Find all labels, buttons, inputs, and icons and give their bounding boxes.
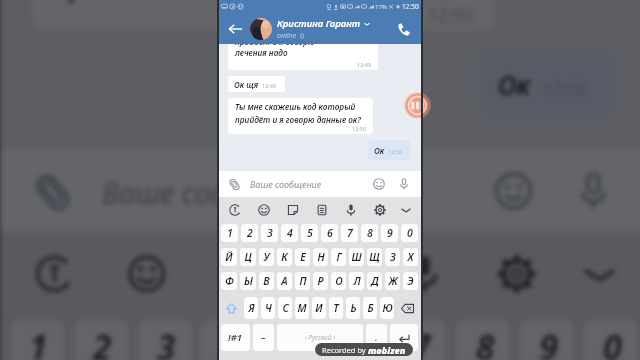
button[interactable]: 4: [281, 224, 298, 242]
button[interactable]: 2: [73, 319, 128, 360]
staticText: 12:49: [357, 61, 372, 68]
button[interactable]: Ю: [380, 297, 394, 319]
button[interactable]: Ок щя: [228, 76, 285, 92]
button[interactable]: Я: [244, 297, 258, 319]
button[interactable]: Е: [295, 248, 310, 266]
button[interactable]: К: [277, 248, 292, 266]
button[interactable]: Translate: [220, 199, 249, 221]
button[interactable]: Voice input: [376, 239, 469, 309]
button[interactable]: 7: [392, 319, 447, 360]
button[interactable]: 3: [137, 319, 191, 360]
button[interactable]: Stickers: [191, 239, 284, 309]
button[interactable]: 1: [221, 224, 238, 242]
button[interactable]: Ф: [221, 272, 237, 290]
button[interactable]: Voice message: [568, 165, 619, 216]
button[interactable]: Shift: [221, 297, 241, 319]
button[interactable]: Emoji: [99, 239, 191, 309]
button[interactable]: 7: [341, 224, 358, 242]
staticText: 6: [327, 226, 333, 240]
button[interactable]: Attach: [226, 176, 242, 192]
button[interactable]: 1: [10, 319, 64, 360]
button[interactable]: Ц: [240, 248, 256, 266]
button[interactable]: ‹ Русский ›: [277, 324, 363, 351]
button[interactable]: Translate: [6, 239, 99, 309]
button[interactable]: 0: [401, 224, 418, 242]
button[interactable]: Ж: [385, 272, 400, 290]
button[interactable]: 6: [321, 224, 338, 242]
button[interactable]: П: [295, 272, 310, 290]
button[interactable]: Ты мне скажешь код который: [228, 98, 373, 134]
staticText: Ты мне скажешь код который: [235, 101, 356, 112]
button[interactable]: Attach: [25, 165, 76, 216]
button[interactable]: !#1: [221, 324, 250, 351]
button[interactable]: 5: [265, 319, 319, 360]
staticText: прийдёт и я говорю: [235, 44, 315, 47]
button[interactable]: Emoji: [371, 176, 387, 192]
button[interactable]: Stickers: [278, 199, 307, 221]
button[interactable]: Enter: [390, 324, 418, 351]
button[interactable]: С: [278, 297, 292, 319]
button[interactable]: 8: [361, 224, 378, 242]
button[interactable]: У: [259, 248, 274, 266]
button[interactable]: 2: [241, 224, 258, 242]
staticText: Ф: [225, 274, 234, 288]
button[interactable]: А: [277, 272, 292, 290]
button[interactable]: З: [385, 248, 400, 266]
button[interactable]: Settings: [469, 239, 561, 309]
staticText: М: [297, 301, 307, 315]
button[interactable]: Х: [403, 248, 418, 266]
button[interactable]: Г: [331, 248, 346, 266]
button[interactable]: Emoji: [488, 165, 539, 216]
button[interactable]: 4: [201, 319, 255, 360]
button[interactable]: –: [253, 324, 274, 351]
button[interactable]: 9: [520, 319, 574, 360]
button[interactable]: Ты мне скажешь код который: [32, 0, 494, 31]
button[interactable]: 5: [301, 224, 318, 242]
button[interactable]: Clipboard: [307, 199, 336, 221]
button[interactable]: Ь: [346, 297, 360, 319]
button[interactable]: Й: [221, 248, 237, 266]
button[interactable]: В: [259, 272, 274, 290]
button[interactable]: О: [331, 272, 346, 290]
button[interactable]: Back: [225, 19, 245, 39]
button[interactable]: 8: [456, 319, 510, 360]
button[interactable]: Clipboard: [284, 239, 376, 309]
staticText: Я: [248, 301, 255, 315]
button[interactable]: Settings: [365, 199, 394, 221]
staticText: 0: [407, 226, 413, 240]
button[interactable]: Call: [393, 19, 413, 39]
staticText: 2: [92, 325, 112, 360]
button[interactable]: Ш: [349, 248, 364, 266]
button[interactable]: 9: [381, 224, 398, 242]
button[interactable]: Hide keyboard: [394, 199, 417, 221]
button[interactable]: Б: [363, 297, 377, 319]
button[interactable]: 0: [584, 319, 638, 360]
button[interactable]: Щ: [367, 248, 382, 266]
button[interactable]: Т: [329, 297, 343, 319]
button[interactable]: М: [295, 297, 309, 319]
button[interactable]: 6: [329, 319, 383, 360]
button[interactable]: Л: [349, 272, 364, 290]
button[interactable]: Ы: [240, 272, 256, 290]
button[interactable]: Ок: [368, 140, 410, 160]
button[interactable]: Ок: [478, 51, 612, 114]
staticText: 12:49: [262, 82, 277, 89]
staticText: 7: [347, 226, 353, 240]
button[interactable]: И: [312, 297, 326, 319]
button[interactable]: Э: [403, 272, 418, 290]
button[interactable]: Voice message: [396, 176, 412, 192]
button[interactable]: Backspace: [397, 297, 418, 319]
staticText: Э: [407, 274, 414, 288]
button[interactable]: Hide keyboard: [561, 239, 635, 309]
button[interactable]: Ч: [261, 297, 275, 319]
button[interactable]: Emoji: [249, 199, 278, 221]
button[interactable]: 3: [261, 224, 278, 242]
button[interactable]: Р: [313, 272, 328, 290]
button[interactable]: Voice input: [336, 199, 365, 221]
staticText: У: [263, 250, 270, 264]
staticText: Д: [371, 274, 379, 288]
button[interactable]: прийдёт и я говорю: [228, 44, 378, 70]
button[interactable]: Н: [313, 248, 328, 266]
button[interactable]: .: [366, 324, 387, 351]
button[interactable]: Д: [367, 272, 382, 290]
